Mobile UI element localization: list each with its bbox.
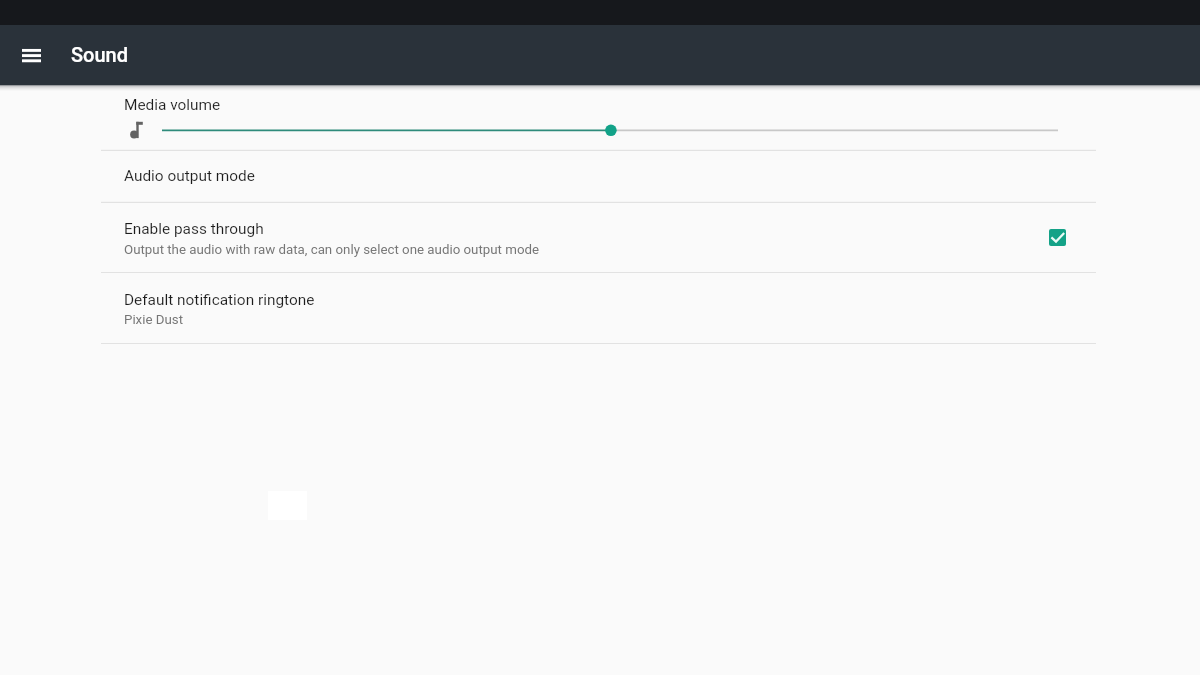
staticText: Media volume <box>124 96 221 114</box>
button[interactable]: Default notification ringtone <box>0 273 1200 344</box>
staticText: Audio output mode <box>124 167 255 185</box>
button[interactable]: Audio output mode <box>0 150 1200 202</box>
staticText: Output the audio with raw data, can only… <box>124 242 540 258</box>
staticText: Enable pass through <box>124 220 264 238</box>
staticText: Sound <box>71 43 129 66</box>
button[interactable]: Open navigation drawer <box>13 37 49 73</box>
button[interactable]: Enable pass through <box>0 202 1200 272</box>
staticText: Default notification ringtone <box>124 291 315 309</box>
button[interactable]: Media volume <box>0 85 1200 150</box>
staticText: Pixie Dust <box>124 312 184 328</box>
button[interactable]: Media volume slider <box>128 115 1064 140</box>
button[interactable]: Enable pass through, checked <box>1049 229 1066 246</box>
